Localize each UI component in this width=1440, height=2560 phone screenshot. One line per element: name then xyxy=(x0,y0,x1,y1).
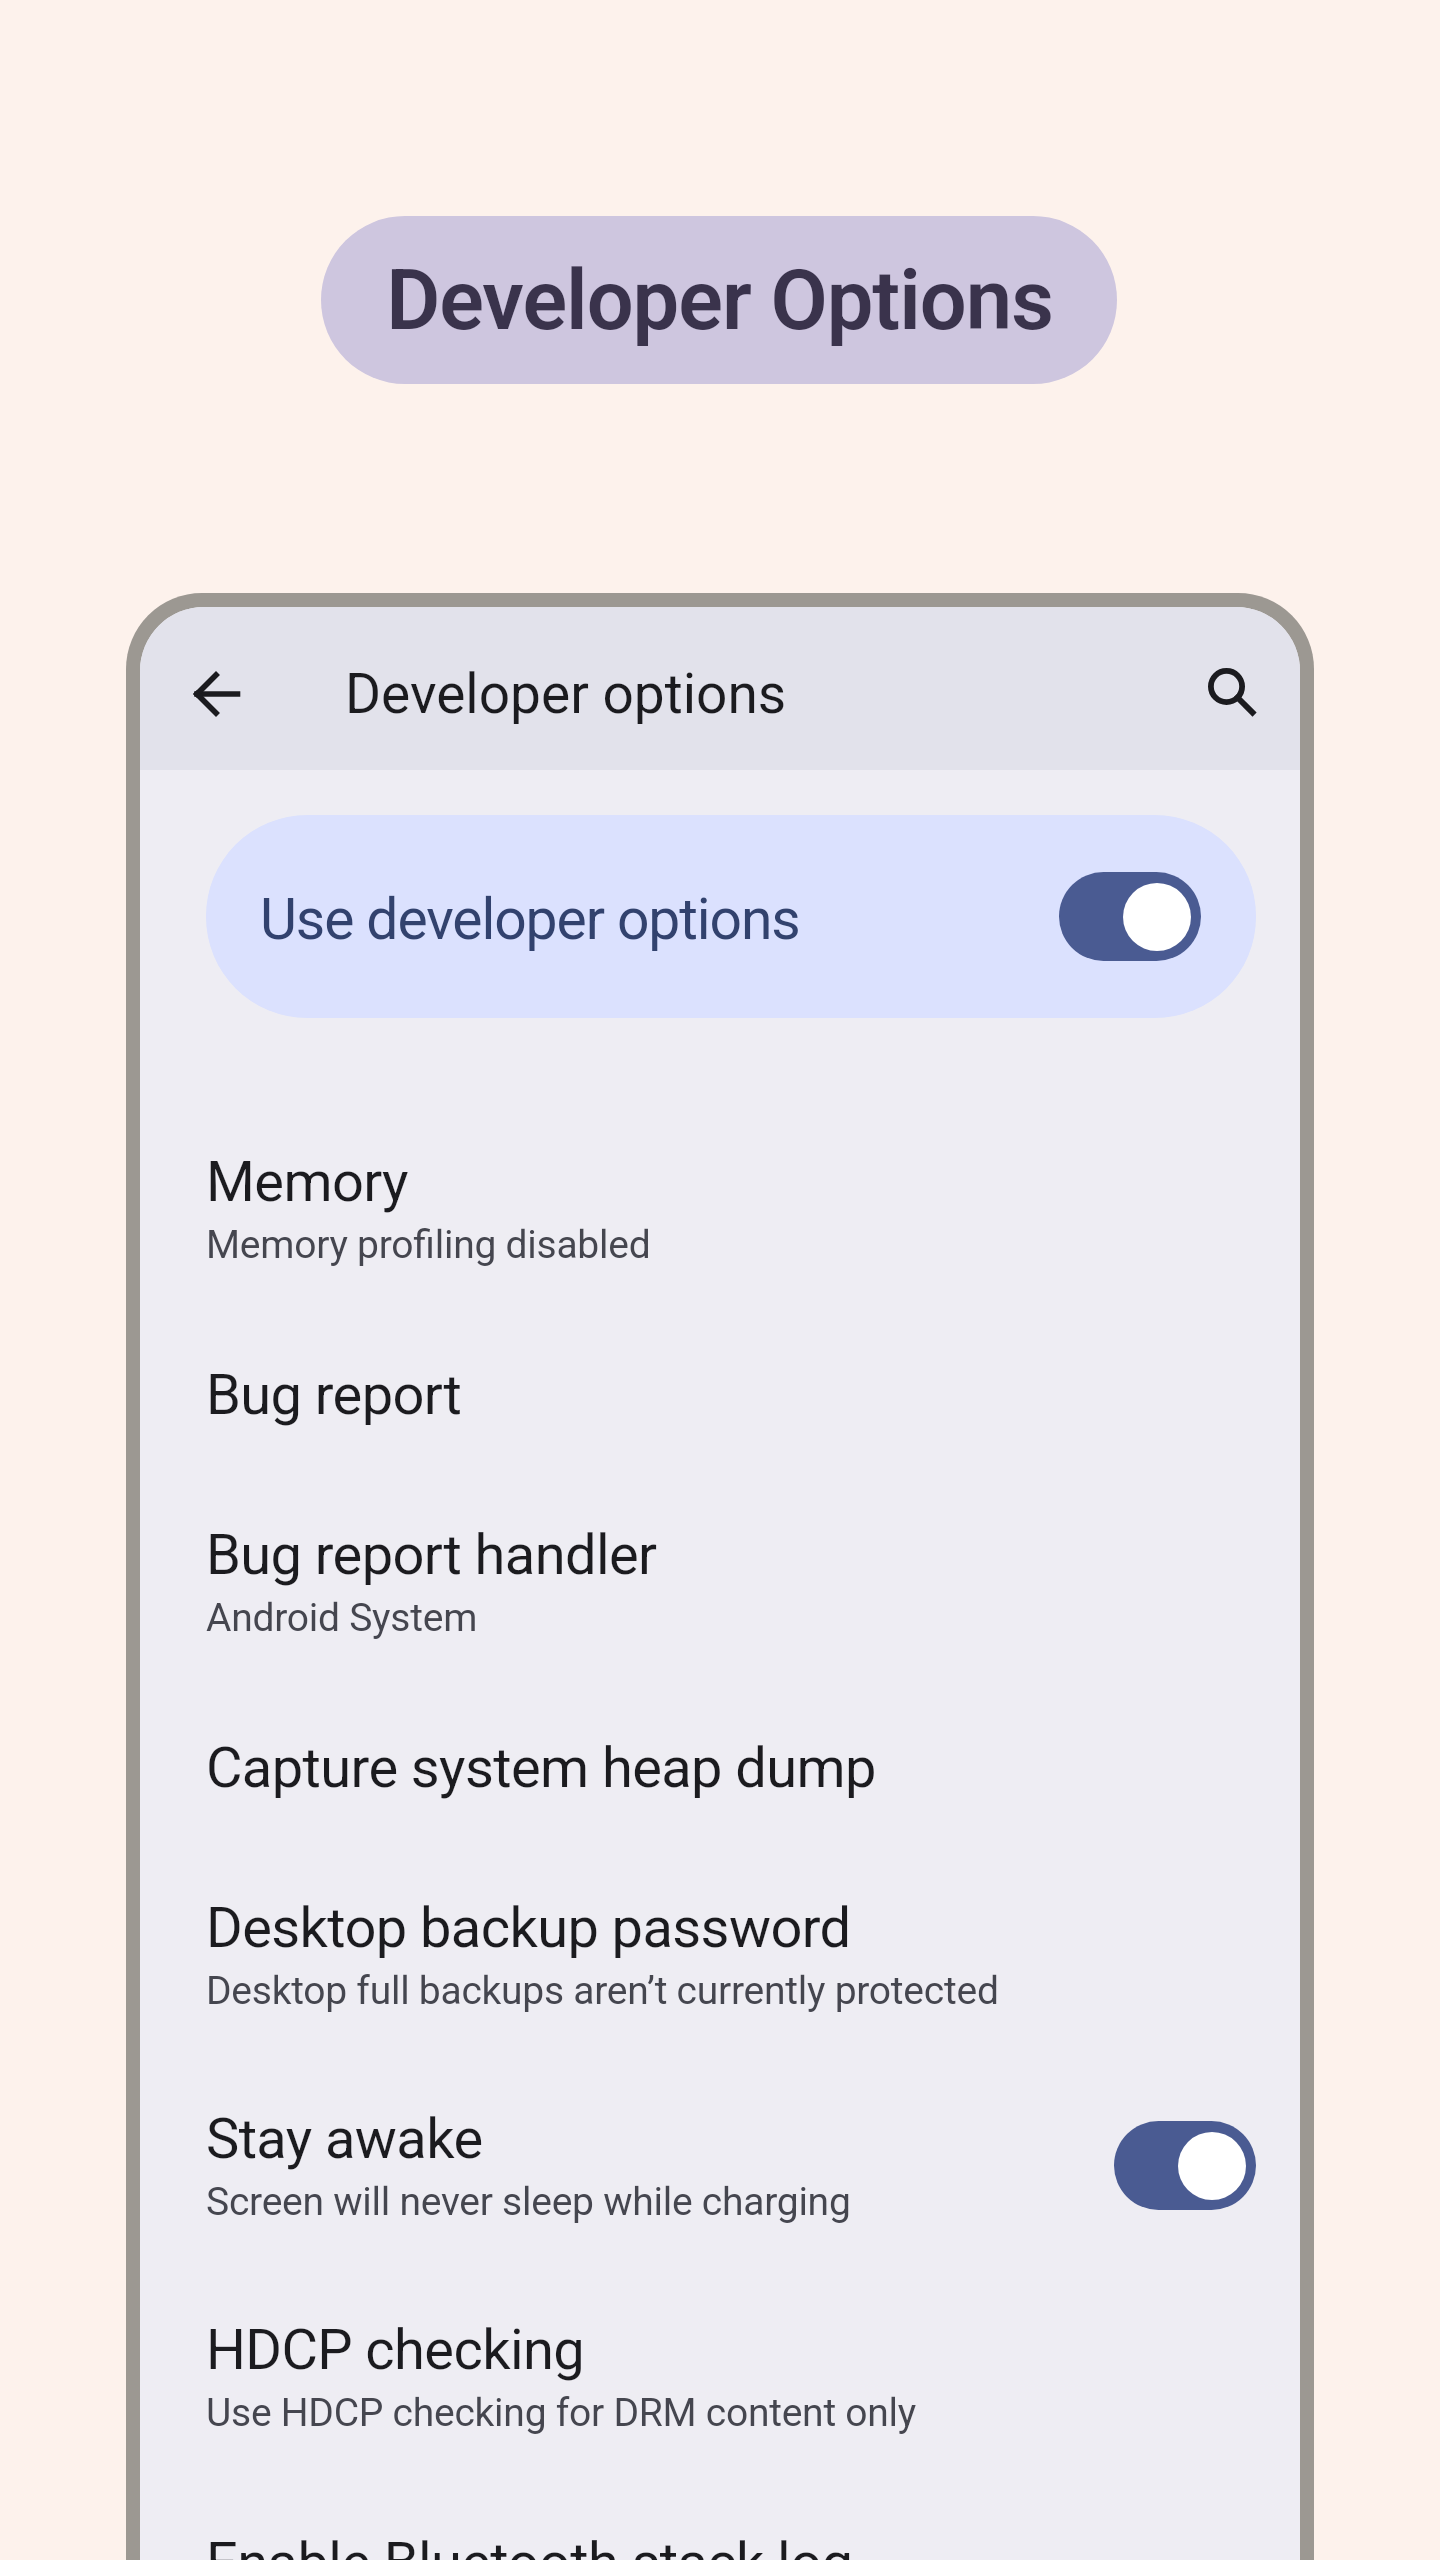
staticText: Use HDCP checking for DRM content only xyxy=(206,2390,917,2436)
staticText: Bug report xyxy=(206,1362,462,1428)
button[interactable]: Bug report xyxy=(140,1314,1300,1476)
button[interactable]: Developer Options xyxy=(321,216,1117,384)
staticText: Enable Bluetooth stack log xyxy=(206,2530,853,2560)
button[interactable]: Enable Bluetooth stack log xyxy=(140,2482,1300,2560)
staticText: Bug report handler xyxy=(206,1522,657,1588)
button[interactable]: Bug report handler xyxy=(140,1476,1300,1687)
button[interactable]: Memory xyxy=(140,1103,1300,1314)
staticText: Memory xyxy=(206,1149,408,1215)
staticText: Desktop backup password xyxy=(206,1895,851,1961)
staticText: Memory profiling disabled xyxy=(206,1222,651,1268)
button[interactable]: HDCP checking xyxy=(140,2271,1300,2482)
staticText: Desktop full backups aren’t currently pr… xyxy=(206,1968,999,2014)
button[interactable]: Search xyxy=(1179,644,1275,740)
staticText: Capture system heap dump xyxy=(206,1735,876,1801)
staticText: Developer Options xyxy=(386,252,1053,349)
staticText: Stay awake xyxy=(206,2106,483,2172)
button[interactable]: Desktop backup password xyxy=(140,1849,1300,2060)
staticText: Screen will never sleep while charging xyxy=(206,2179,851,2225)
button[interactable]: Use developer options xyxy=(206,815,1256,1018)
staticText: Developer options xyxy=(345,662,787,726)
button[interactable]: Stay awake xyxy=(140,2060,1300,2271)
button[interactable]: Back xyxy=(168,646,264,742)
button[interactable]: Capture system heap dump xyxy=(140,1687,1300,1849)
staticText: HDCP checking xyxy=(206,2317,585,2383)
staticText: Use developer options xyxy=(260,886,800,953)
staticText: Android System xyxy=(206,1595,478,1641)
